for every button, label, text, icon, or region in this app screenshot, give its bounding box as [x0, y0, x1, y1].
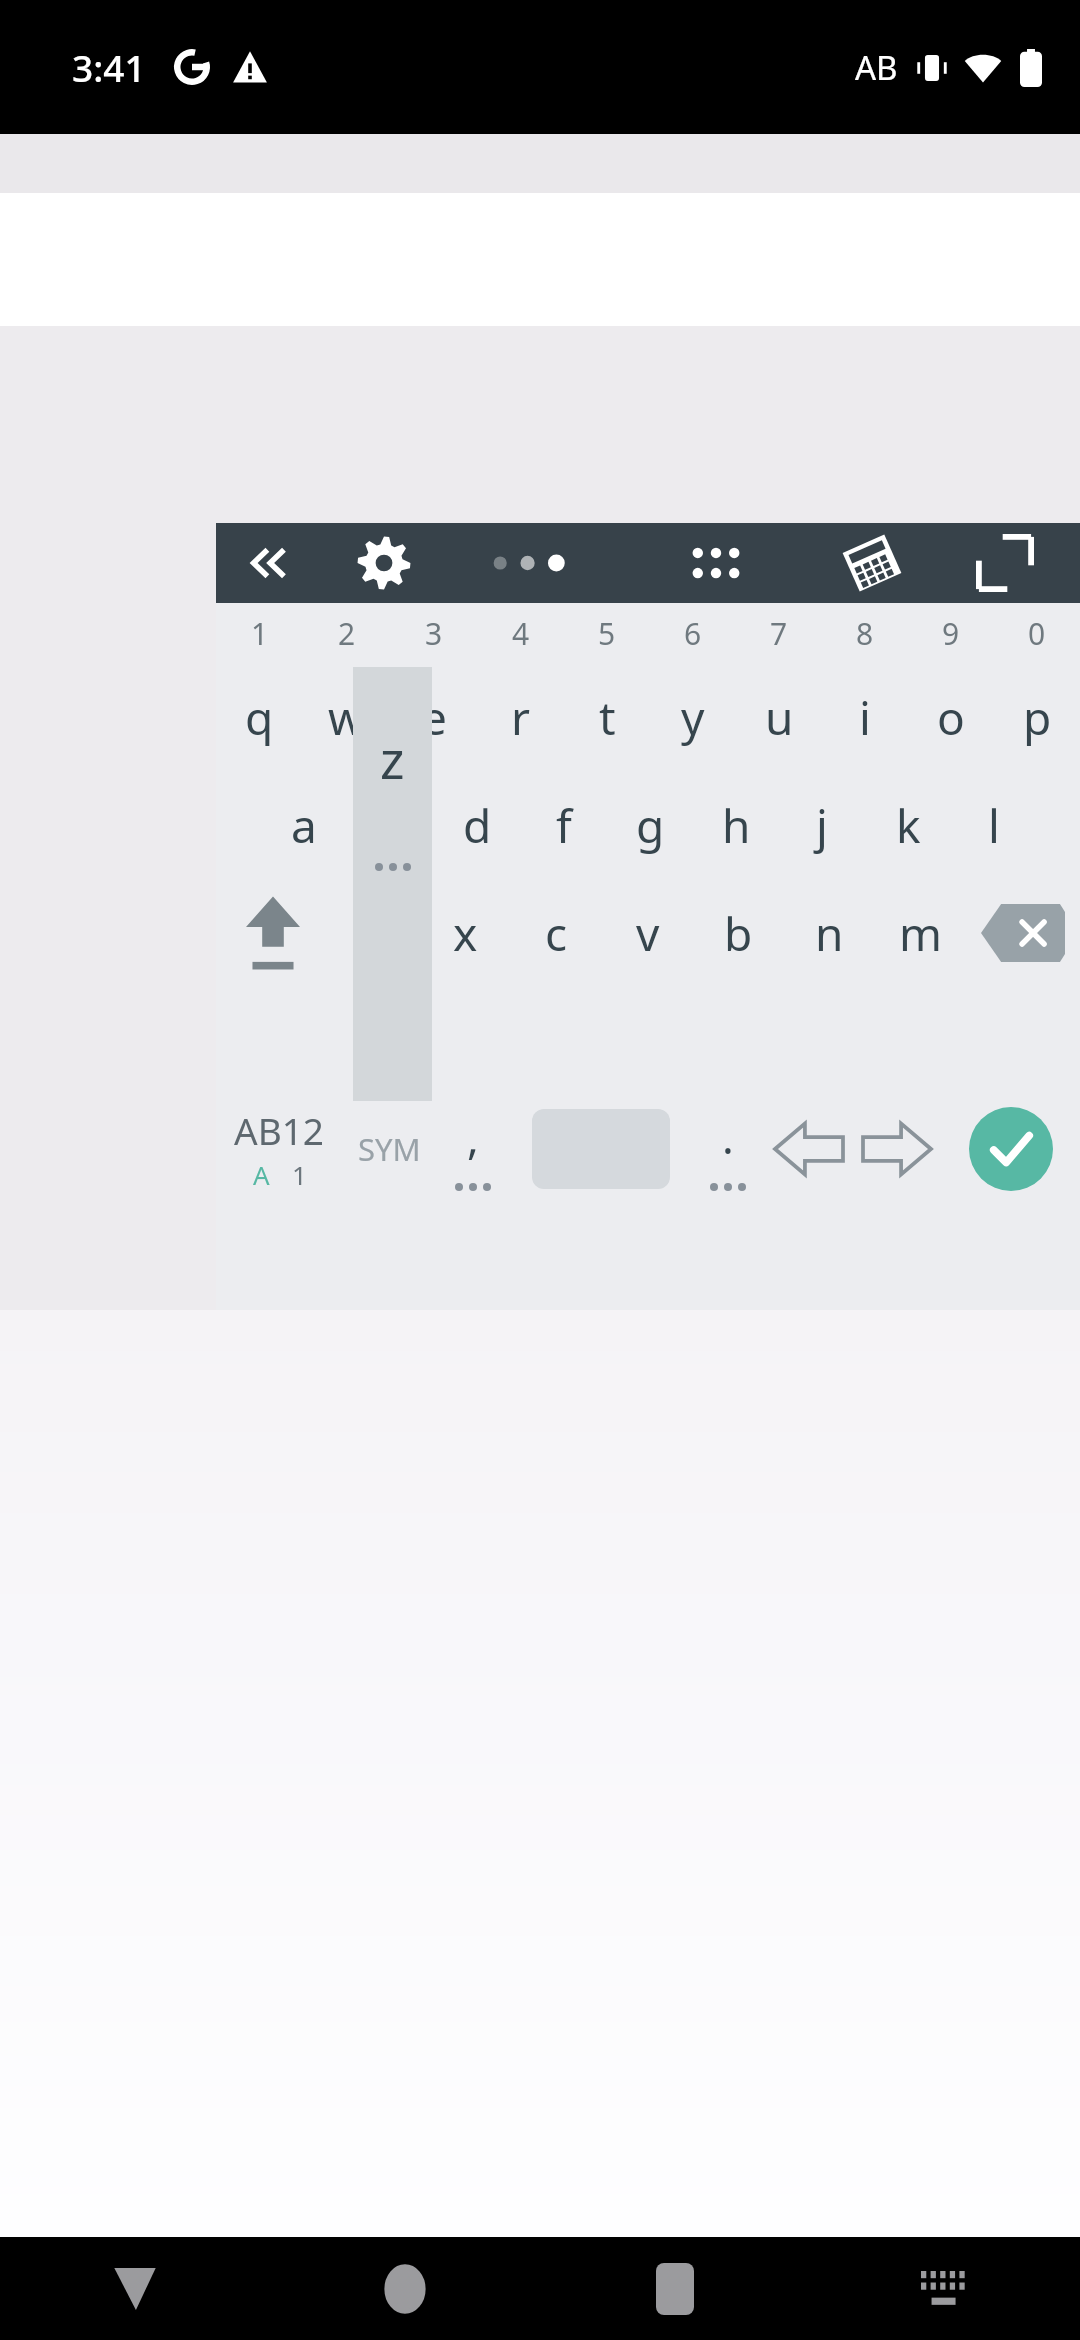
staticText: g: [636, 794, 665, 857]
staticText: 7: [770, 613, 788, 654]
staticText: x: [453, 902, 478, 965]
button[interactable]: b: [693, 879, 784, 987]
button[interactable]: q: [216, 663, 303, 771]
staticText: k: [896, 794, 921, 857]
button[interactable]: h: [693, 771, 779, 879]
button[interactable]: 4: [477, 603, 564, 663]
button[interactable]: .: [691, 987, 765, 1310]
staticText: 1: [292, 1157, 307, 1192]
button[interactable]: Settings: [328, 523, 440, 603]
button[interactable]: t: [564, 663, 650, 771]
staticText: y: [681, 686, 705, 749]
button[interactable]: d: [434, 771, 521, 879]
button[interactable]: 2: [303, 603, 390, 663]
button[interactable]: f: [521, 771, 607, 879]
button[interactable]: l: [951, 771, 1037, 879]
button[interactable]: y: [650, 663, 736, 771]
button[interactable]: Keypad layout: [814, 523, 930, 603]
staticText: q: [245, 686, 274, 749]
staticText: r: [511, 686, 530, 749]
staticText: h: [722, 794, 751, 857]
button[interactable]: Space: [510, 987, 691, 1310]
staticText: n: [815, 902, 844, 965]
button[interactable]: 6: [650, 603, 736, 663]
button[interactable]: p: [994, 663, 1080, 771]
button[interactable]: Switch keyboard: [810, 2237, 1080, 2340]
staticText: 4: [512, 613, 530, 654]
staticText: o: [937, 686, 965, 749]
staticText: 9: [942, 613, 960, 654]
button[interactable]: j: [779, 771, 865, 879]
button[interactable]: AB12: [216, 987, 342, 1310]
button[interactable]: Apps: [618, 523, 814, 603]
staticText: p: [1023, 686, 1052, 749]
button[interactable]: u: [736, 663, 822, 771]
button[interactable]: Shift: [216, 879, 329, 987]
staticText: d: [463, 794, 492, 857]
staticText: w: [328, 686, 365, 749]
staticText: AB: [855, 45, 898, 90]
button[interactable]: o: [908, 663, 994, 771]
button[interactable]: i: [822, 663, 908, 771]
button[interactable]: v: [602, 879, 693, 987]
button[interactable]: Home: [270, 2237, 540, 2340]
button[interactable]: m: [875, 879, 966, 987]
button[interactable]: 8: [822, 603, 908, 663]
button[interactable]: Recents: [540, 2237, 810, 2340]
staticText: v: [636, 902, 660, 965]
staticText: b: [724, 902, 753, 965]
staticText: f: [556, 794, 572, 857]
staticText: m: [899, 902, 943, 965]
button[interactable]: 1: [216, 603, 303, 663]
staticText: 3:41: [72, 42, 146, 92]
staticText: .: [722, 1107, 734, 1167]
button[interactable]: e: [390, 663, 477, 771]
staticText: t: [599, 686, 616, 749]
staticText: 5: [598, 613, 616, 654]
staticText: 0: [1028, 613, 1046, 654]
button[interactable]: Backspace: [966, 879, 1080, 987]
button[interactable]: a: [260, 771, 347, 879]
button[interactable]: 0: [994, 603, 1080, 663]
button[interactable]: ,: [436, 987, 510, 1310]
staticText: 2: [338, 613, 356, 654]
staticText: z: [380, 723, 405, 794]
staticText: 3: [425, 613, 443, 654]
button[interactable]: k: [865, 771, 951, 879]
staticText: AB12: [234, 1105, 325, 1155]
button[interactable]: w: [303, 663, 390, 771]
staticText: 1: [251, 613, 269, 654]
button[interactable]: r: [477, 663, 564, 771]
button[interactable]: n: [784, 879, 875, 987]
button[interactable]: x: [420, 879, 511, 987]
staticText: i: [859, 686, 871, 749]
button[interactable]: Collapse toolbar: [216, 523, 328, 603]
staticText: 6: [684, 613, 702, 654]
button[interactable]: Cursor right: [853, 987, 941, 1310]
button[interactable]: Hide keyboard: [0, 2237, 270, 2340]
button[interactable]: Resize keyboard: [930, 523, 1080, 603]
staticText: A: [253, 1157, 270, 1192]
button[interactable]: Enter: [941, 987, 1080, 1310]
staticText: SYM: [358, 1128, 421, 1170]
button[interactable]: z: [329, 879, 420, 987]
button[interactable]: 9: [908, 603, 994, 663]
button[interactable]: c: [511, 879, 602, 987]
button[interactable]: 3: [390, 603, 477, 663]
button[interactable]: Page indicator: [440, 523, 618, 603]
button[interactable]: 7: [736, 603, 822, 663]
staticText: j: [816, 794, 828, 857]
staticText: l: [988, 794, 1000, 857]
staticText: u: [765, 686, 794, 749]
staticText: e: [421, 686, 447, 749]
staticText: c: [545, 902, 568, 965]
staticText: ,: [467, 1107, 479, 1167]
button[interactable]: SYM: [342, 987, 436, 1310]
button[interactable]: Cursor left: [765, 987, 853, 1310]
staticText: 8: [856, 613, 874, 654]
button[interactable]: s: [347, 771, 434, 879]
button[interactable]: 5: [564, 603, 650, 663]
button[interactable]: g: [607, 771, 693, 879]
